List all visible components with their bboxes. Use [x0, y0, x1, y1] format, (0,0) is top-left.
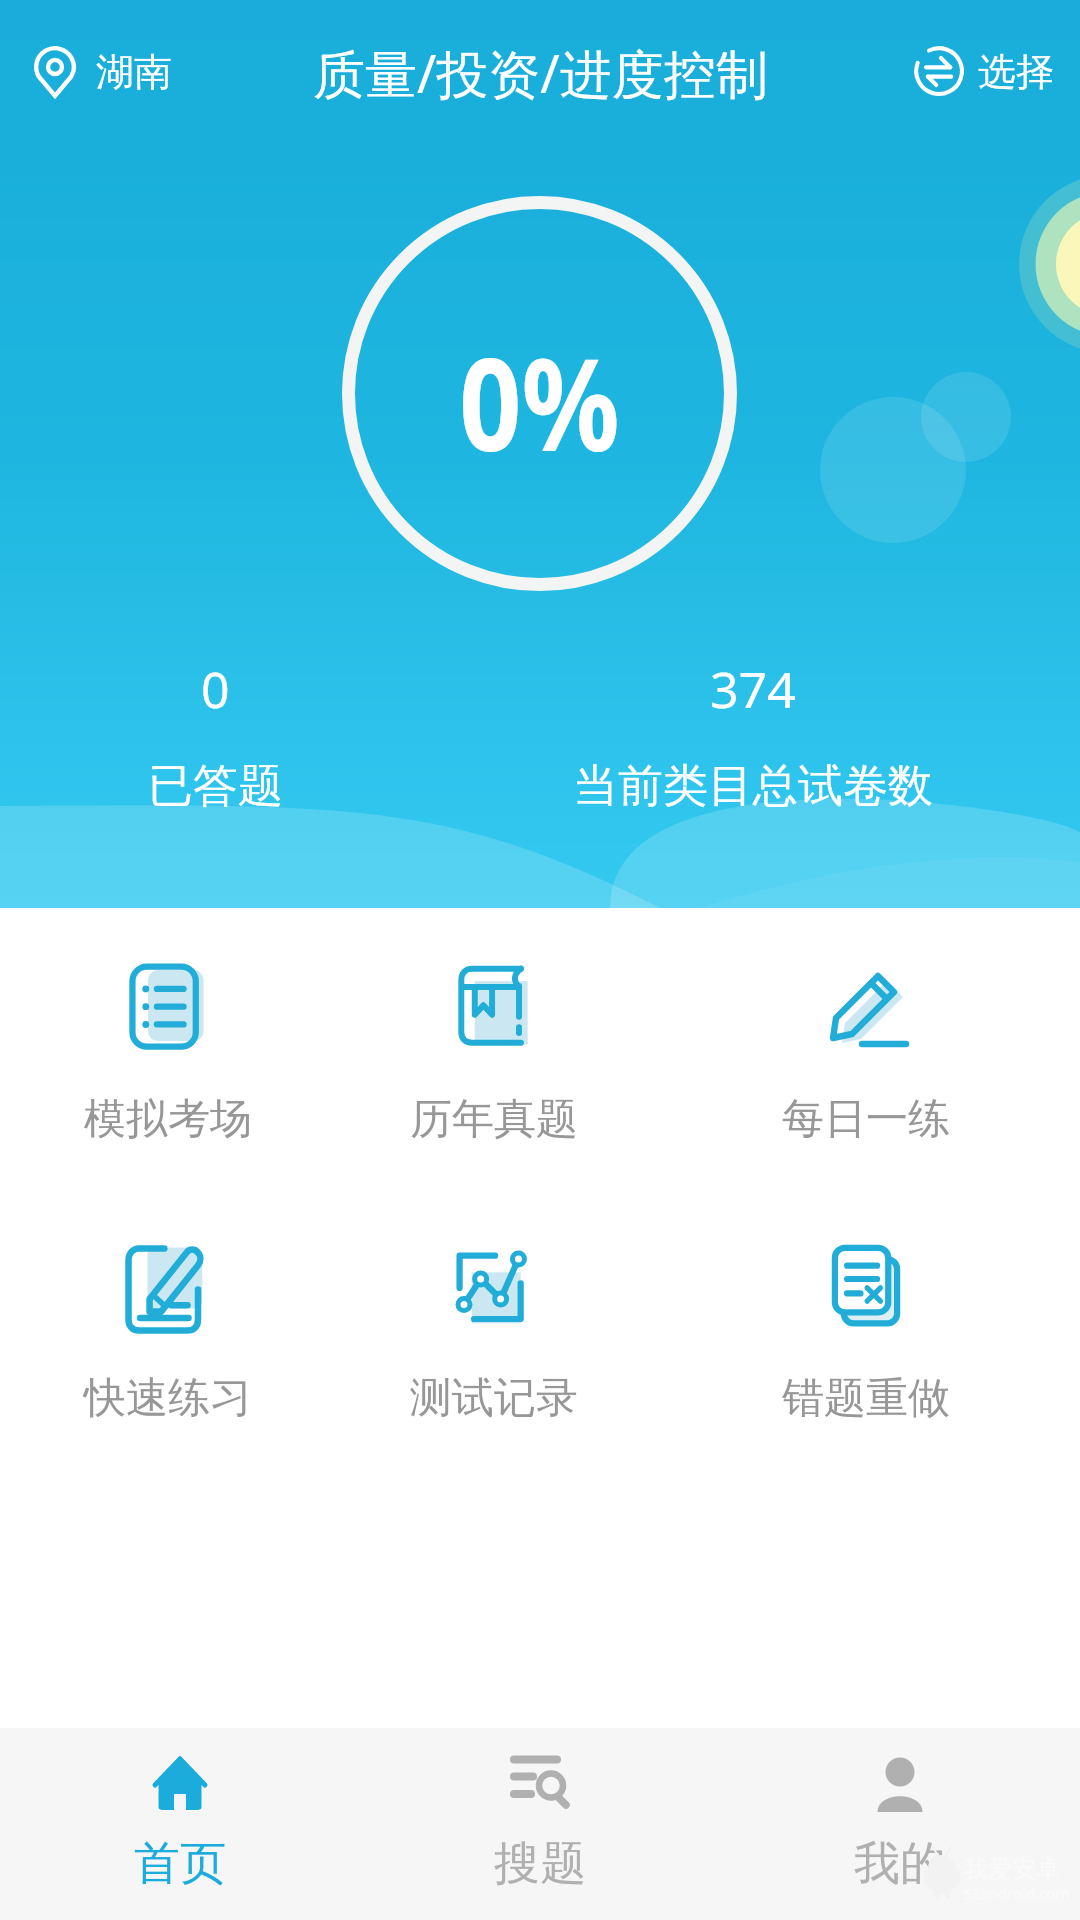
- staticText: 首页: [134, 1835, 226, 1893]
- button[interactable]: 历年真题: [344, 960, 644, 1180]
- staticText: 测试记录: [410, 1372, 578, 1425]
- button[interactable]: 快速练习: [18, 1239, 318, 1459]
- button[interactable]: 模拟考场: [18, 960, 318, 1180]
- button[interactable]: 首页: [0, 1728, 360, 1920]
- button[interactable]: 选择: [900, 30, 1066, 114]
- button[interactable]: 我的: [720, 1728, 1080, 1920]
- staticText: 我的: [854, 1835, 946, 1893]
- staticText: 错题重做: [782, 1372, 950, 1425]
- staticText: 模拟考场: [84, 1093, 252, 1146]
- button[interactable]: 搜题: [360, 1728, 720, 1920]
- staticText: 0%: [459, 314, 620, 488]
- button[interactable]: 每日一练: [716, 960, 1016, 1180]
- button[interactable]: 测试记录: [344, 1239, 644, 1459]
- staticText: 374: [710, 655, 796, 723]
- button[interactable]: 湖南: [22, 32, 184, 112]
- staticText: 快速练习: [84, 1372, 252, 1425]
- staticText: 选择: [978, 48, 1054, 96]
- staticText: 湖南: [96, 48, 172, 96]
- staticText: 质量/投资/进度控制: [313, 37, 768, 108]
- staticText: 0: [201, 655, 230, 723]
- staticText: 当前类目总试卷数: [573, 758, 933, 815]
- staticText: 每日一练: [782, 1093, 950, 1146]
- staticText: 搜题: [494, 1835, 586, 1893]
- staticText: 历年真题: [410, 1093, 578, 1146]
- button[interactable]: 错题重做: [716, 1239, 1016, 1459]
- staticText: 已答题: [148, 758, 283, 815]
